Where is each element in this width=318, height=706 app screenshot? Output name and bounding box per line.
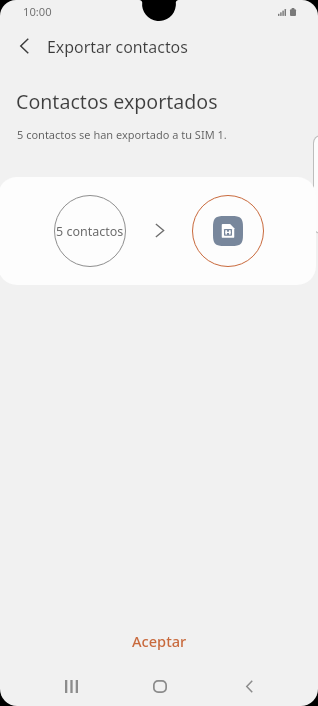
staticText: 5 contactos — [56, 223, 124, 240]
staticText: Contactos exportados — [16, 88, 218, 115]
button[interactable]: Recent apps — [48, 665, 94, 706]
staticText: Aceptar — [132, 631, 187, 651]
button[interactable]: 5 contactos — [0, 177, 316, 285]
button[interactable]: Home — [137, 665, 183, 706]
button[interactable]: Back — [8, 30, 40, 62]
button[interactable]: Back — [226, 665, 272, 706]
button[interactable]: Aceptar — [0, 628, 318, 654]
staticText: 5 contactos se han exportado a tu SIM 1. — [17, 127, 227, 142]
staticText: Exportar contactos — [47, 36, 188, 58]
staticText: 10:00 — [23, 4, 52, 19]
